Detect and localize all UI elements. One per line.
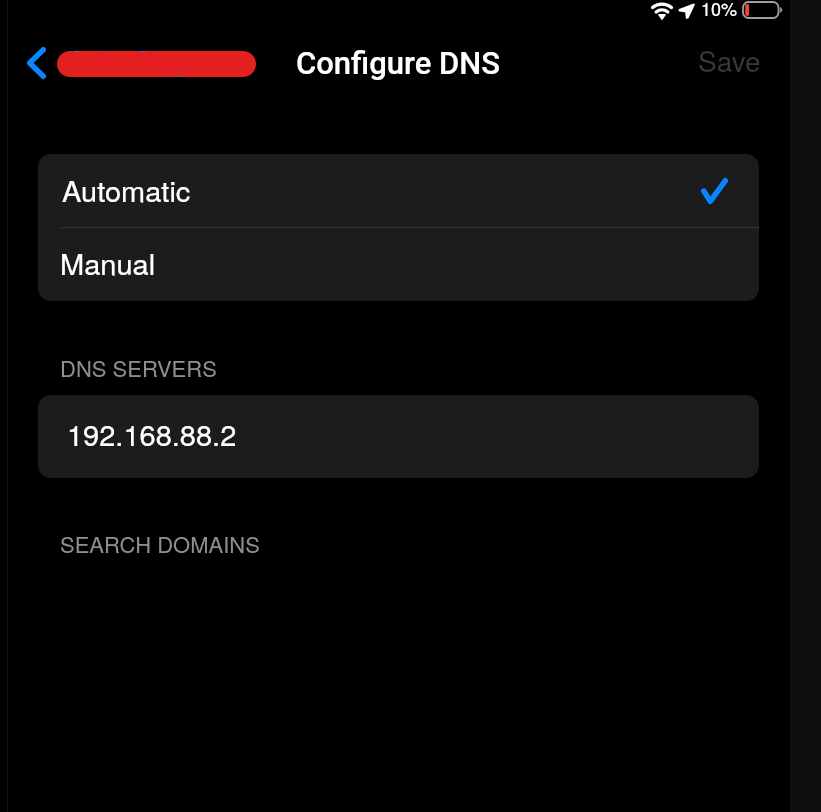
button[interactable]: Save: [681, 37, 778, 83]
staticText: SEARCH DOMAINS: [60, 528, 260, 560]
button[interactable]: Automatic: [38, 154, 759, 227]
staticText: Manual: [60, 242, 156, 284]
staticText: 10%: [701, 0, 738, 21]
staticText: DNS SERVERS: [60, 352, 217, 384]
staticText: 192.168.88.2: [67, 413, 237, 455]
button[interactable]: 192.168.88.2: [38, 395, 759, 478]
staticText: Configure DNS: [296, 45, 500, 81]
button[interactable]: Manual: [38, 228, 759, 301]
staticText: Save: [698, 40, 761, 80]
button[interactable]: Back: [18, 40, 236, 86]
staticText: Automatic: [62, 169, 191, 211]
